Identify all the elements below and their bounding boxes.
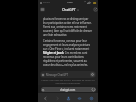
button[interactable]: New chat [92, 6, 98, 12]
staticText: chatgpt.com [60, 88, 76, 92]
staticText: Message ChatGPT [46, 73, 69, 77]
staticText: 13:42 [67, 1, 73, 4]
button[interactable]: Menu [87, 94, 95, 102]
button[interactable]: ChatGPT [62, 7, 79, 12]
staticText: SFR 4G [43, 1, 50, 4]
staticText: Certains forceness, connus pour leur eng… [43, 39, 91, 67]
staticText: ChatGPT [62, 7, 76, 12]
staticText: plusieurs forceness se distinguent par l… [43, 17, 93, 37]
button[interactable]: Share [64, 94, 72, 102]
button[interactable]: chatgpt.com [41, 87, 96, 92]
button[interactable]: Back [41, 94, 49, 102]
button[interactable]: Reload [92, 88, 95, 91]
staticText: ChatGPT peut faire des erreurs. Envisage… [41, 79, 95, 85]
button[interactable]: Open sidebar [39, 6, 45, 12]
button[interactable]: Tabs [75, 94, 83, 102]
button[interactable]: Message ChatGPT [40, 71, 96, 78]
